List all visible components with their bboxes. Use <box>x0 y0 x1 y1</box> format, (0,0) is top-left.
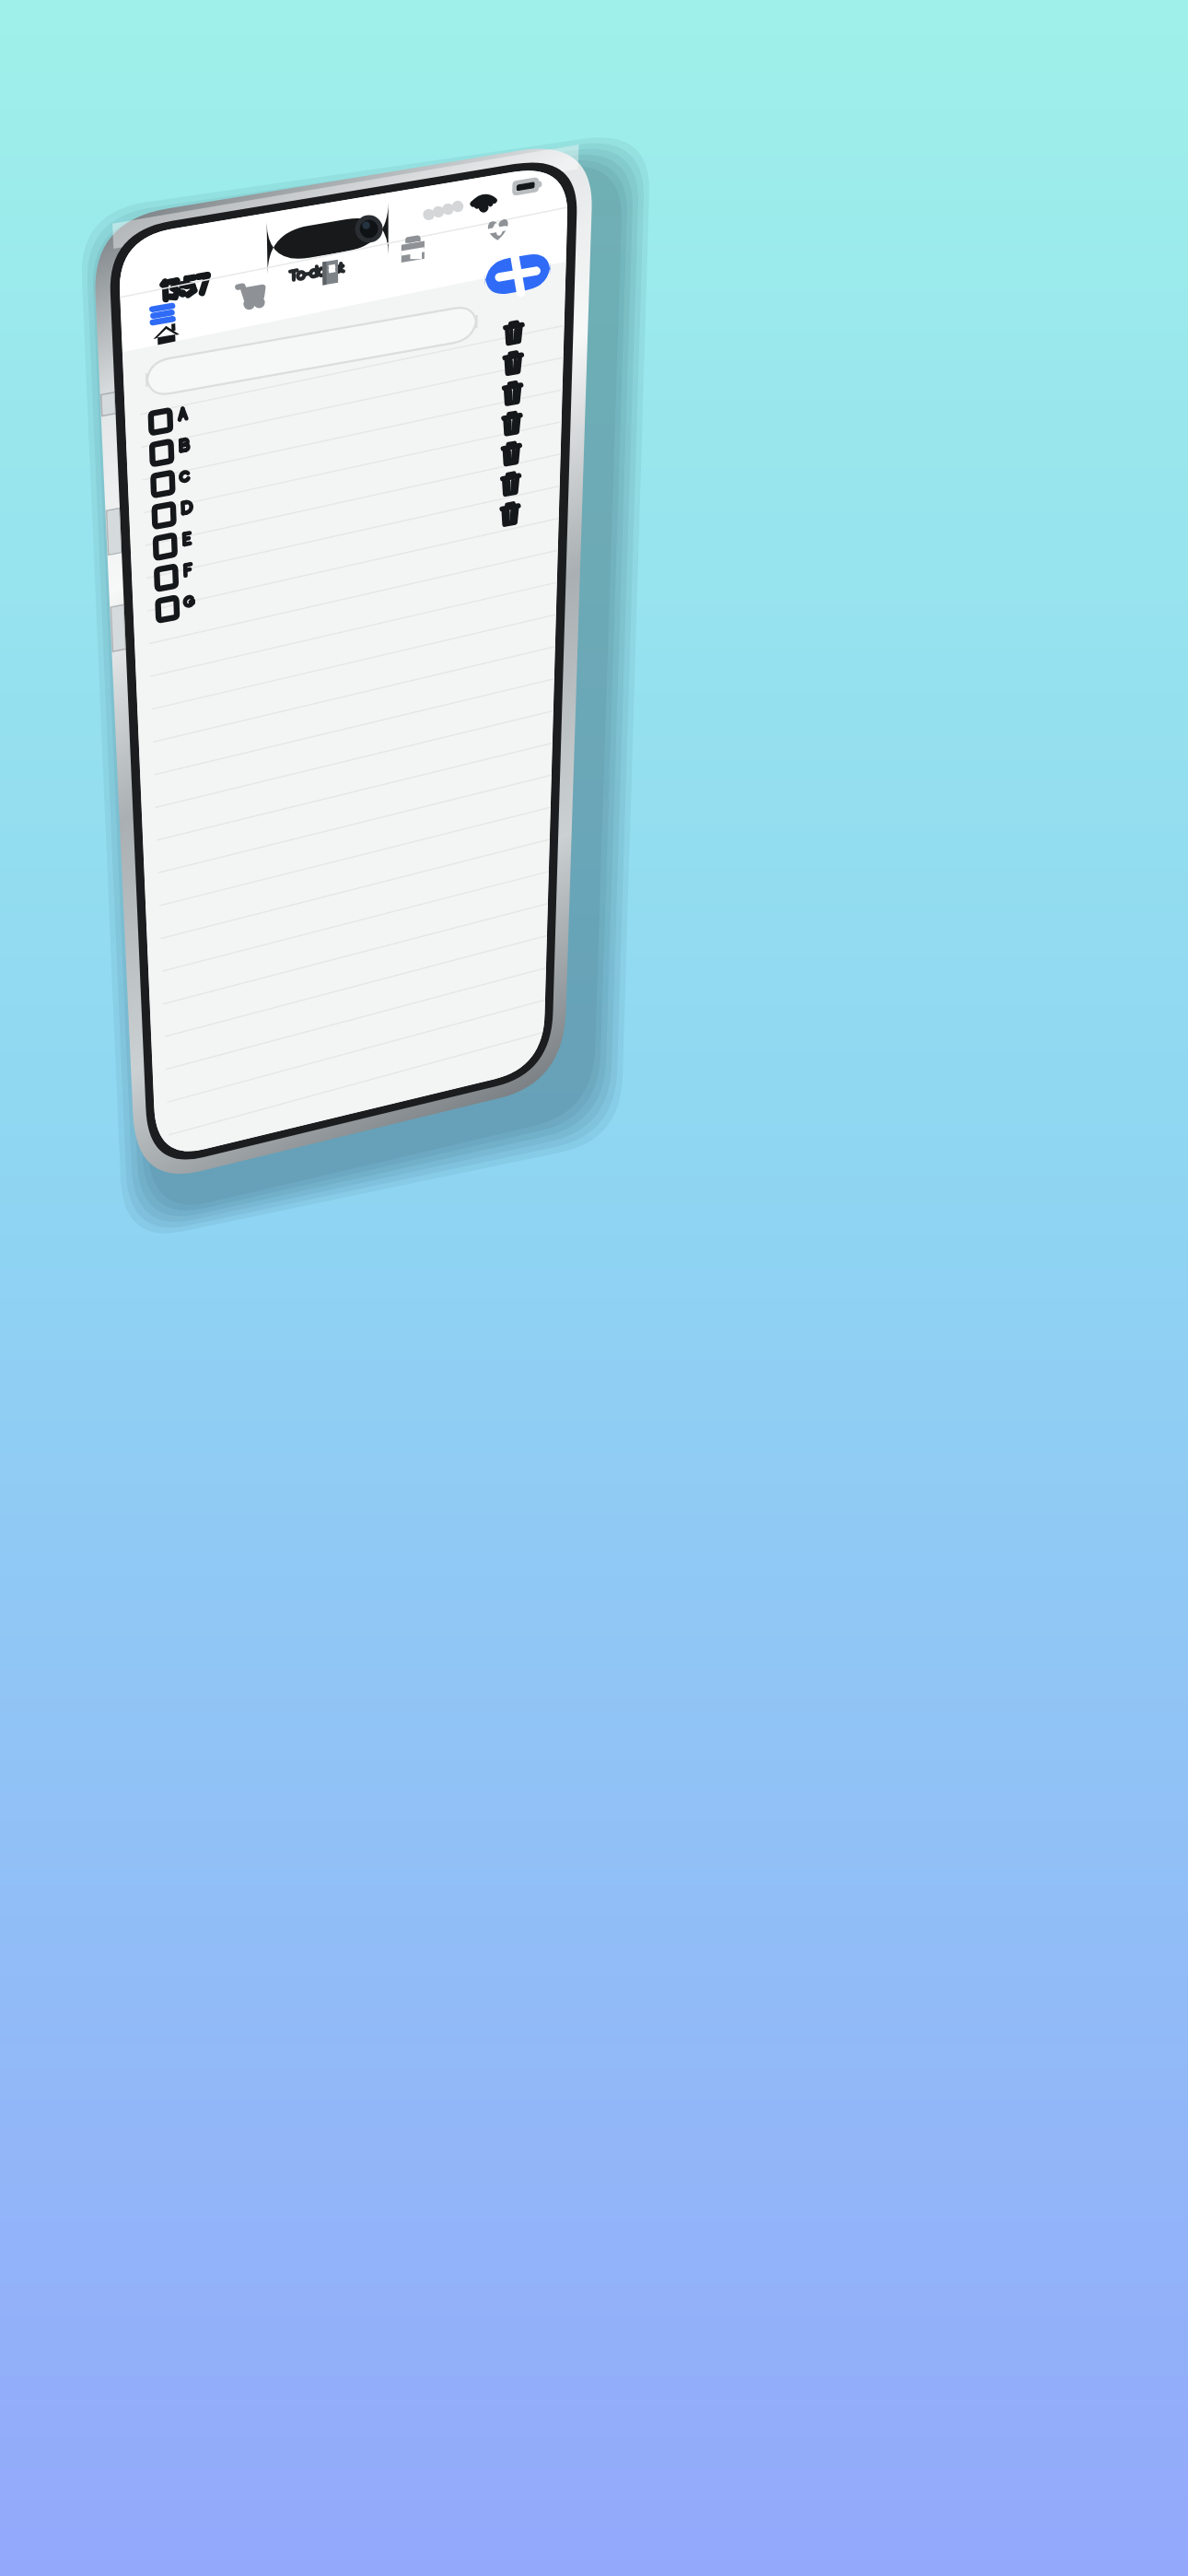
button[interactable] <box>101 952 577 1024</box>
button[interactable]: Home <box>95 425 166 486</box>
button[interactable] <box>101 1033 577 1105</box>
button[interactable]: Notes <box>396 347 461 404</box>
button[interactable]: Work <box>566 334 632 392</box>
button[interactable] <box>101 627 577 699</box>
button[interactable] <box>101 708 577 780</box>
button[interactable] <box>131 489 677 567</box>
button[interactable]: Shopping <box>232 358 297 416</box>
button[interactable] <box>101 871 577 943</box>
button[interactable] <box>101 790 577 861</box>
button[interactable] <box>101 546 577 618</box>
button[interactable]: Menu <box>87 363 152 420</box>
